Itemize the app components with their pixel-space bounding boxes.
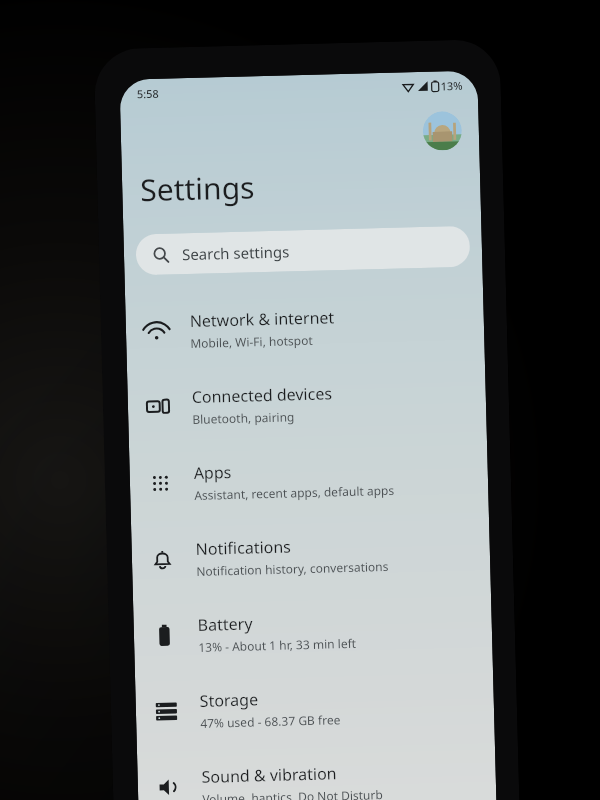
staticText: Assistant, recent apps, default apps (194, 482, 394, 503)
button[interactable]: Network & internet (125, 284, 485, 370)
staticText: 47% used - 68.37 GB free (200, 711, 341, 731)
staticText: Sound & vibration (201, 762, 337, 788)
staticText: Apps (193, 461, 232, 484)
button[interactable]: Account and profile (422, 111, 462, 151)
staticText: Battery (197, 612, 253, 636)
staticText: Notifications (195, 535, 292, 560)
button[interactable]: Search settings (135, 226, 470, 275)
button[interactable]: Connected devices (127, 360, 487, 446)
staticText: Storage (199, 688, 259, 712)
staticText: Settings (140, 166, 256, 210)
staticText: Bluetooth, pairing (192, 408, 295, 427)
staticText: Network & internet (189, 306, 335, 332)
button[interactable]: Apps (129, 436, 489, 522)
staticText: Volume, haptics, Do Not Disturb (202, 786, 383, 800)
staticText: 5:58 (137, 86, 159, 101)
button[interactable]: Sound & vibration (137, 740, 497, 800)
staticText: Connected devices (191, 382, 333, 408)
button[interactable]: Storage (135, 664, 495, 749)
button[interactable]: Battery (133, 588, 493, 673)
staticText: 13% (440, 78, 463, 93)
staticText: Mobile, Wi-Fi, hotspot (190, 332, 313, 351)
staticText: Notification history, conversations (196, 558, 389, 579)
staticText: Search settings (182, 241, 290, 264)
staticText: 13% - About 1 hr, 33 min left (198, 635, 356, 655)
button[interactable]: Notifications (131, 512, 491, 598)
